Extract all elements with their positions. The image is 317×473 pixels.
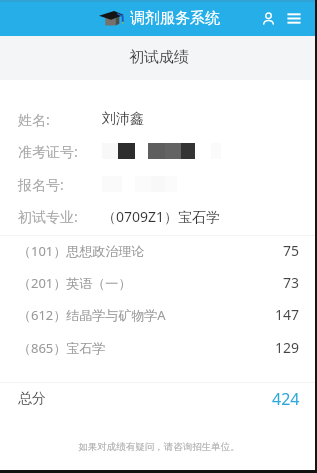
- staticText: 初试专业:: [18, 207, 78, 226]
- staticText: 刘沛鑫: [102, 110, 144, 128]
- staticText: 147: [275, 305, 300, 324]
- staticText: 424: [272, 388, 300, 410]
- staticText: （101）思想政治理论: [18, 242, 145, 260]
- button[interactable]: Account: [255, 5, 281, 31]
- staticText: 报名号:: [18, 175, 64, 194]
- button[interactable]: （201）英语（一）: [0, 267, 317, 298]
- staticText: （865）宝石学: [18, 339, 106, 357]
- button[interactable]: （612）结晶学与矿物学A: [0, 299, 317, 330]
- staticText: 如果对成绩有疑问，请咨询招生单位。: [78, 441, 240, 453]
- staticText: 初试成绩: [129, 48, 189, 67]
- staticText: （0709Z1）宝石学: [102, 207, 221, 226]
- staticText: 73: [283, 273, 300, 292]
- button[interactable]: （865）宝石学: [0, 332, 317, 363]
- button[interactable]: （101）思想政治理论: [0, 235, 317, 266]
- staticText: （201）英语（一）: [18, 274, 132, 292]
- staticText: 129: [275, 338, 300, 357]
- staticText: （612）结晶学与矿物学A: [18, 306, 166, 324]
- staticText: 75: [283, 241, 300, 260]
- staticText: 姓名:: [18, 110, 50, 129]
- staticText: 调剂服务系统: [130, 9, 220, 28]
- button[interactable]: Menu: [281, 5, 307, 31]
- staticText: 总分: [18, 390, 46, 408]
- staticText: 准考证号:: [18, 142, 78, 161]
